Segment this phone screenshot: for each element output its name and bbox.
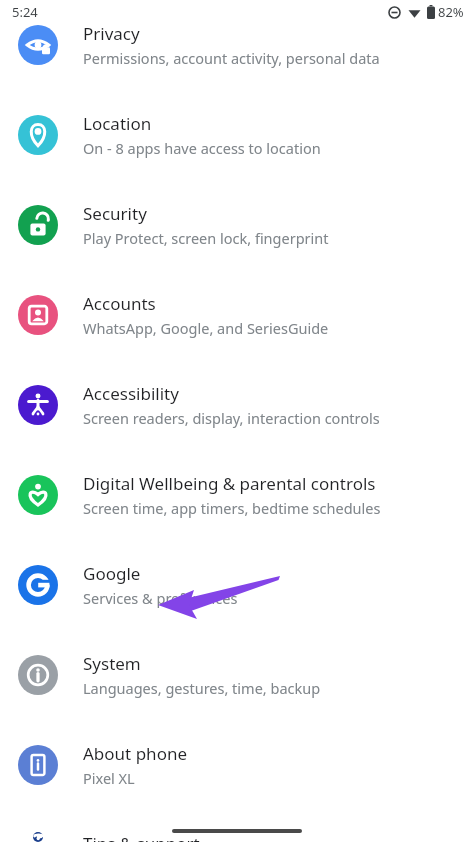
staticText: About phone [83,742,188,765]
staticText: Languages, gestures, time, backup [83,678,321,698]
staticText: Screen time, app timers, bedtime schedul… [83,498,381,518]
staticText: WhatsApp, Google, and SeriesGuide [83,318,329,338]
button[interactable]: Accounts [0,292,474,338]
staticText: Digital Wellbeing & parental controls [83,472,376,495]
button[interactable]: Google [0,562,474,608]
staticText: Play Protect, screen lock, fingerprint [83,228,329,248]
button[interactable]: Digital Wellbeing & parental controls [0,472,474,518]
staticText: Security [83,202,147,225]
staticText: Accounts [83,292,156,315]
button[interactable]: About phone [0,742,474,788]
staticText: Screen readers, display, interaction con… [83,408,380,428]
staticText: Services & preferences [83,588,238,608]
staticText: Location [83,112,152,135]
staticText: Tips & support [83,832,200,842]
staticText: Permissions, account activity, personal … [83,48,380,68]
button[interactable]: System [0,652,474,698]
button[interactable]: Privacy [0,22,474,68]
button[interactable]: Security [0,202,474,248]
staticText: Privacy [83,22,140,45]
staticText: On - 8 apps have access to location [83,138,321,158]
staticText: 5:24 [12,3,38,21]
staticText: System [83,652,141,675]
staticText: Google [83,562,141,585]
button[interactable]: Tips & support [0,832,474,842]
staticText: 82% [438,3,464,21]
button[interactable]: Location [0,112,474,158]
staticText: Accessibility [83,382,179,405]
button[interactable]: Accessibility [0,382,474,428]
staticText: Pixel XL [83,768,135,788]
